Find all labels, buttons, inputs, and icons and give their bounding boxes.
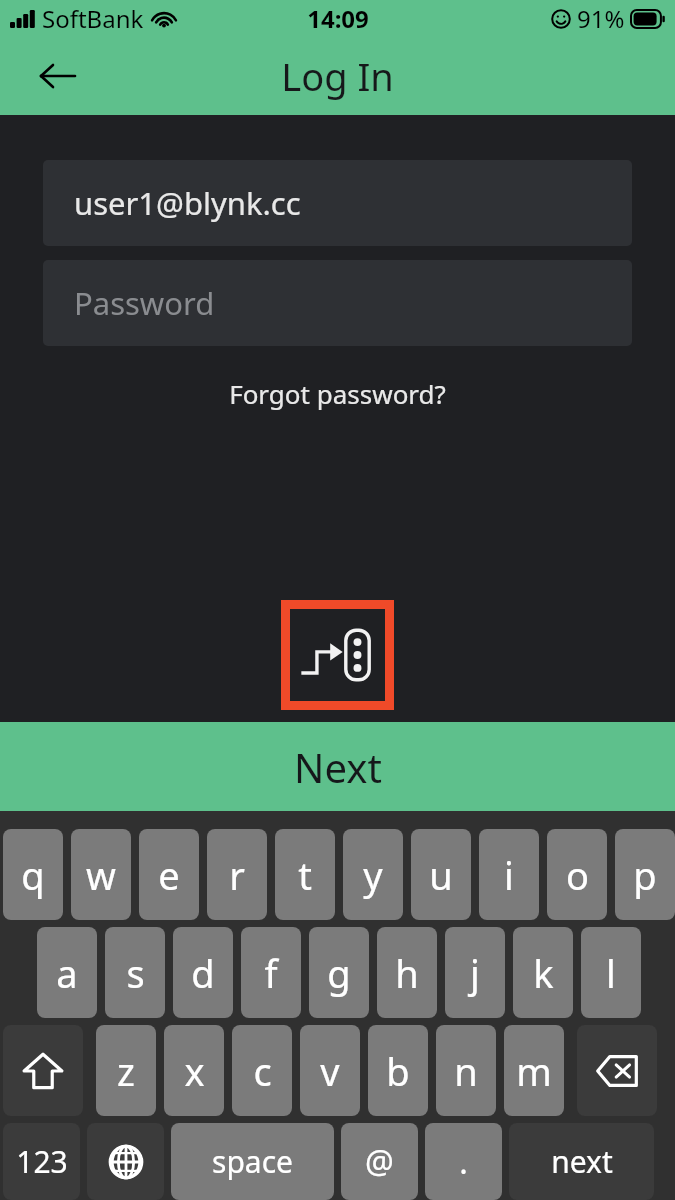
button[interactable]: Change keyboard <box>87 1123 164 1200</box>
button[interactable]: z <box>96 1025 156 1116</box>
staticText: q <box>21 849 45 901</box>
button[interactable]: next <box>509 1123 654 1200</box>
staticText: p <box>633 849 657 901</box>
button[interactable]: user1@blynk.cc <box>43 160 632 246</box>
staticText: Password <box>74 282 215 324</box>
staticText: i <box>504 849 514 901</box>
staticText: m <box>516 1045 552 1097</box>
button[interactable]: v <box>300 1025 360 1116</box>
button[interactable]: j <box>445 927 505 1018</box>
staticText: d <box>191 947 215 999</box>
staticText: t <box>298 849 312 901</box>
staticText: z <box>117 1045 135 1097</box>
staticText: . <box>459 1140 468 1184</box>
staticText: r <box>229 849 245 901</box>
staticText: 14:09 <box>307 2 369 35</box>
button[interactable]: g <box>309 927 369 1018</box>
staticText: Log In <box>281 50 394 102</box>
staticText: @ <box>365 1140 394 1184</box>
button[interactable]: e <box>139 829 199 920</box>
button[interactable]: i <box>479 829 539 920</box>
staticText: v <box>320 1045 340 1097</box>
staticText: 91% <box>577 2 625 35</box>
staticText: space <box>212 1141 293 1182</box>
button[interactable]: Next <box>0 722 675 811</box>
button[interactable]: x <box>164 1025 224 1116</box>
staticText: l <box>606 947 616 999</box>
button[interactable]: f <box>241 927 301 1018</box>
button[interactable]: u <box>411 829 471 920</box>
button[interactable]: Backspace <box>577 1025 657 1116</box>
button[interactable]: Shift <box>3 1025 83 1116</box>
staticText: x <box>184 1045 205 1097</box>
button[interactable]: n <box>436 1025 496 1116</box>
staticText: next <box>551 1141 613 1182</box>
button[interactable]: k <box>513 927 573 1018</box>
staticText: Forgot password? <box>229 376 446 411</box>
staticText: b <box>386 1045 410 1097</box>
staticText: o <box>566 849 589 901</box>
button[interactable]: m <box>504 1025 564 1116</box>
button[interactable]: b <box>368 1025 428 1116</box>
staticText: u <box>429 849 453 901</box>
staticText: n <box>454 1045 478 1097</box>
button[interactable]: 123 <box>3 1123 80 1200</box>
button[interactable]: w <box>71 829 131 920</box>
staticText: k <box>533 947 554 999</box>
staticText: user1@blynk.cc <box>74 182 301 224</box>
button[interactable]: space <box>171 1123 334 1200</box>
button[interactable]: r <box>207 829 267 920</box>
button[interactable]: t <box>275 829 335 920</box>
button[interactable]: Forgot password? <box>0 376 675 411</box>
button[interactable]: Input method switcher <box>290 609 385 701</box>
staticText: a <box>56 947 78 999</box>
button[interactable]: l <box>581 927 641 1018</box>
button[interactable]: h <box>377 927 437 1018</box>
staticText: h <box>395 947 419 999</box>
button[interactable]: c <box>232 1025 292 1116</box>
button[interactable]: o <box>547 829 607 920</box>
button[interactable]: @ <box>341 1123 418 1200</box>
button[interactable]: d <box>173 927 233 1018</box>
button[interactable]: q <box>3 829 63 920</box>
button[interactable]: Password <box>43 260 632 346</box>
button[interactable]: p <box>615 829 675 920</box>
staticText: Next <box>294 740 382 794</box>
staticText: e <box>158 849 180 901</box>
button[interactable]: y <box>343 829 403 920</box>
staticText: c <box>253 1045 272 1097</box>
staticText: 123 <box>16 1141 68 1182</box>
button[interactable]: s <box>105 927 165 1018</box>
staticText: f <box>264 947 278 999</box>
staticText: j <box>470 947 480 999</box>
staticText: y <box>363 849 383 901</box>
staticText: g <box>327 947 351 999</box>
button[interactable]: Back <box>28 47 86 105</box>
staticText: SoftBank <box>42 2 144 35</box>
button[interactable]: . <box>425 1123 502 1200</box>
staticText: w <box>86 849 116 901</box>
staticText: s <box>126 947 145 999</box>
button[interactable]: a <box>37 927 97 1018</box>
